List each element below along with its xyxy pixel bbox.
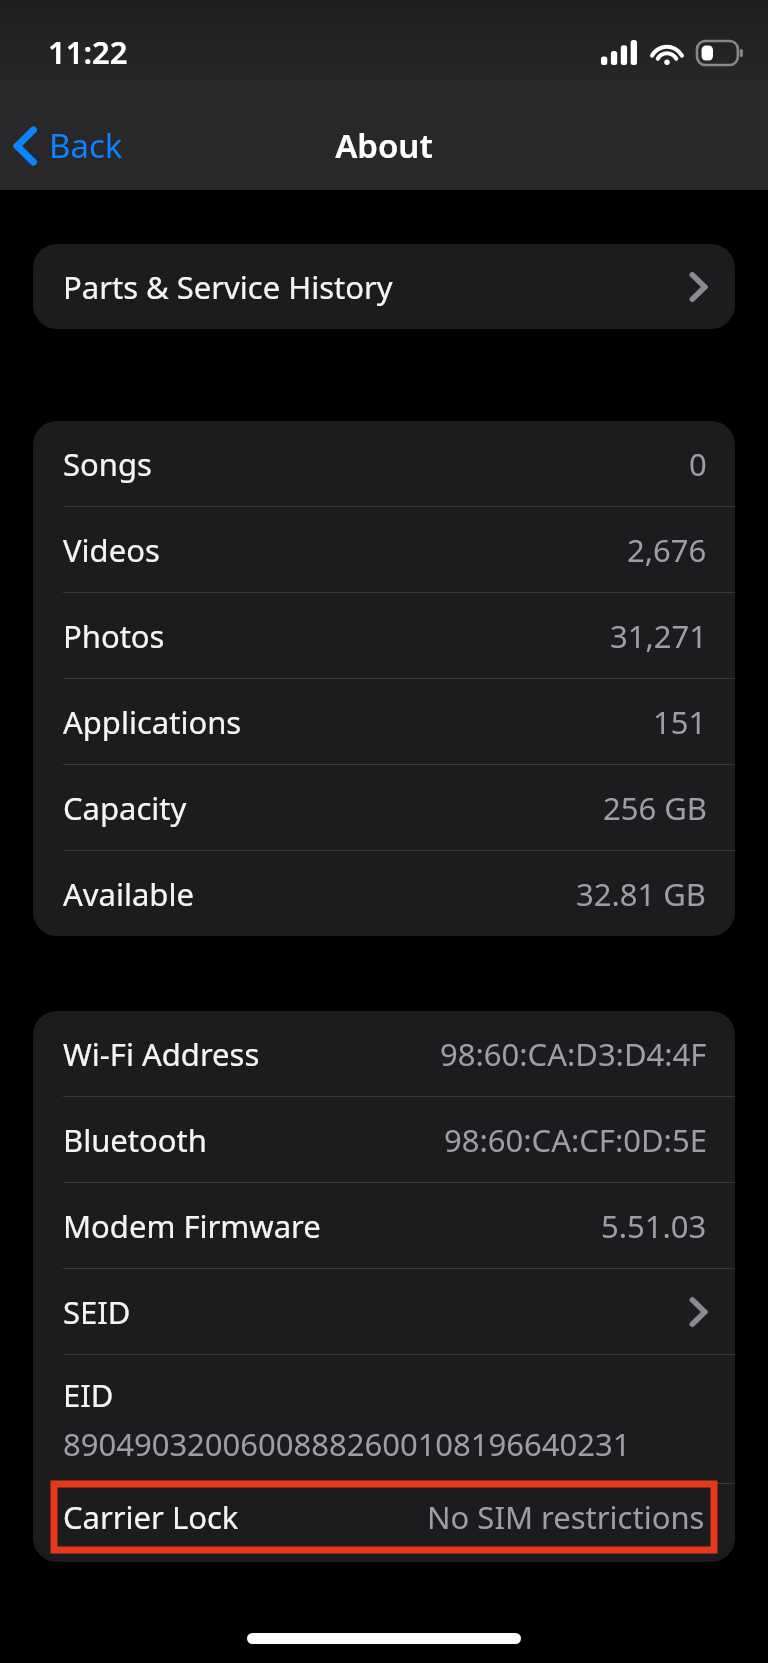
staticText: 98:60:CA:D3:D4:4F: [440, 1033, 707, 1075]
staticText: EID: [63, 1374, 114, 1416]
staticText: 31,271: [610, 615, 707, 657]
staticText: Videos: [63, 529, 160, 571]
staticText: Songs: [63, 443, 152, 485]
staticText: 5.51.03: [601, 1205, 707, 1247]
staticText: Wi-Fi Address: [63, 1033, 260, 1075]
staticText: 89049032006008882600108196640231: [63, 1423, 631, 1465]
button[interactable]: SEID: [33, 1269, 735, 1354]
staticText: 32.81 GB: [576, 873, 707, 915]
button[interactable]: Carrier Lock: [54, 1484, 714, 1550]
button[interactable]: Back: [0, 115, 141, 176]
other: Open: [689, 271, 707, 303]
staticText: Available: [63, 873, 194, 915]
staticText: No SIM restrictions: [427, 1496, 705, 1538]
staticText: Parts & Service History: [63, 266, 393, 308]
staticText: 2,676: [627, 529, 707, 571]
staticText: Back: [49, 123, 123, 168]
staticText: About: [335, 123, 433, 168]
button[interactable]: EID: [33, 1355, 735, 1483]
staticText: Carrier Lock: [63, 1496, 239, 1538]
staticText: 151: [653, 701, 707, 743]
staticText: Photos: [63, 615, 165, 657]
staticText: 98:60:CA:CF:0D:5E: [444, 1119, 707, 1161]
staticText: 256 GB: [603, 787, 707, 829]
staticText: Capacity: [63, 787, 187, 829]
staticText: Applications: [63, 701, 242, 743]
staticText: 11:22: [48, 31, 128, 73]
staticText: Modem Firmware: [63, 1205, 321, 1247]
other: Open: [689, 1296, 707, 1328]
staticText: 0: [689, 443, 707, 485]
staticText: Bluetooth: [63, 1119, 207, 1161]
button[interactable]: Parts & Service History: [33, 244, 735, 329]
staticText: SEID: [63, 1291, 131, 1333]
